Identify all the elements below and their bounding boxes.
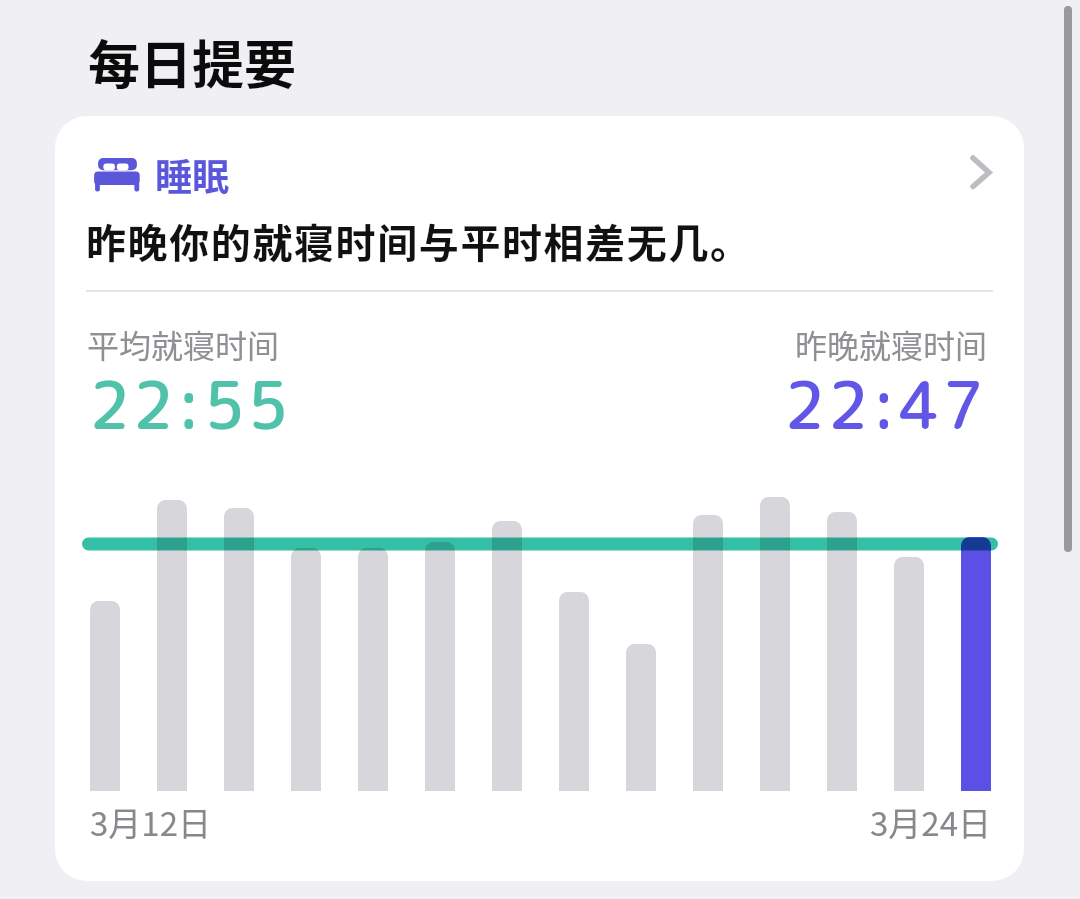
button[interactable]	[55, 116, 1024, 881]
staticText: 22:55	[89, 359, 291, 450]
staticText: 睡眠	[155, 148, 229, 202]
staticText: 3月12日	[90, 798, 211, 846]
staticText: 3月24日	[870, 798, 991, 846]
staticText: 昨晚你的就寝时间与平时相差无几。	[86, 212, 752, 270]
staticText: 昨晚就寝时间	[795, 321, 988, 367]
staticText: 每日提要	[88, 24, 297, 99]
staticText: 22:47	[784, 359, 986, 450]
staticText: 平均就寝时间	[87, 321, 280, 367]
